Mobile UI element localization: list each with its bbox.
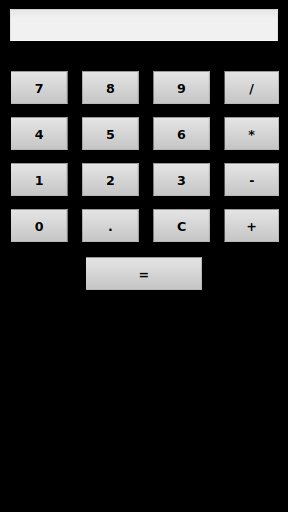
button[interactable]: + <box>225 209 279 242</box>
button[interactable]: 5 <box>82 117 139 150</box>
button[interactable]: 0 <box>11 209 67 242</box>
button[interactable]: 7 <box>11 71 67 104</box>
button[interactable]: 4 <box>11 117 67 150</box>
button[interactable]: 3 <box>153 163 210 196</box>
staticText: 3 <box>177 173 186 188</box>
staticText: * <box>248 127 255 142</box>
button[interactable]: 8 <box>82 71 139 104</box>
button[interactable]: 1 <box>11 163 67 196</box>
staticText: 0 <box>35 219 44 234</box>
staticText: . <box>108 219 113 234</box>
staticText: 2 <box>106 173 115 188</box>
staticText: 9 <box>177 81 186 96</box>
staticText: - <box>249 173 254 188</box>
button[interactable]: C <box>153 209 210 242</box>
staticText: 6 <box>177 127 186 142</box>
staticText: + <box>246 219 257 234</box>
button[interactable]: * <box>225 117 279 150</box>
button[interactable]: . <box>82 209 139 242</box>
staticText: 4 <box>35 127 44 142</box>
button[interactable]: 6 <box>153 117 210 150</box>
staticText: 1 <box>35 173 44 188</box>
button[interactable]: / <box>225 71 279 104</box>
staticText: = <box>138 267 149 282</box>
staticText: 8 <box>106 81 115 96</box>
button[interactable]: - <box>225 163 279 196</box>
button[interactable]: = <box>86 257 202 290</box>
staticText: / <box>249 81 254 96</box>
button[interactable]: 2 <box>82 163 139 196</box>
button[interactable]: 9 <box>153 71 210 104</box>
staticText: 5 <box>106 127 115 142</box>
staticText: C <box>177 219 186 234</box>
staticText: 7 <box>35 81 44 96</box>
